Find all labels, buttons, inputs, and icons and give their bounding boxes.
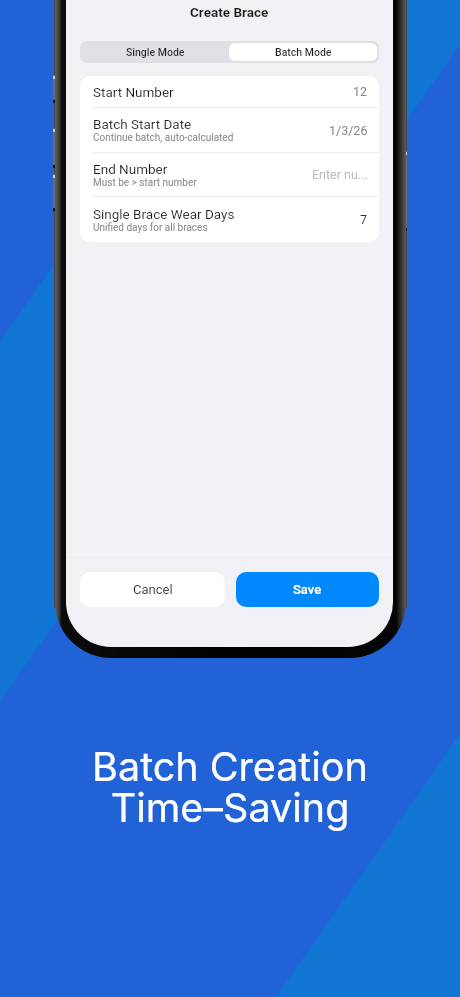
button[interactable]: Single Brace Wear Days [80,197,379,242]
staticText: Save [293,582,322,597]
button[interactable]: Single Mode [82,43,229,61]
staticText: 1/3/26 [329,123,368,138]
button[interactable]: Batch Mode [229,43,377,61]
staticText: Unified days for all braces [93,222,208,234]
staticText: Enter nu... [312,167,368,182]
button[interactable]: Batch Start Date [80,108,379,152]
staticText: Create Brace [190,4,269,20]
button[interactable]: End Number [80,153,379,196]
staticText: Continue batch, auto-calculated [93,132,234,144]
staticText: Must be > start number [93,177,197,189]
staticText: End Number [93,161,168,177]
staticText: Batch Creation Time–Saving [92,743,368,831]
button[interactable]: Start Number [80,76,379,107]
staticText: 7 [360,212,368,227]
staticText: Cancel [133,582,173,597]
staticText: Single Mode [126,46,185,58]
button[interactable]: Save [236,572,379,607]
staticText: 12 [353,84,368,99]
staticText: Start Number [93,84,174,100]
button[interactable]: Cancel [80,572,225,607]
staticText: Single Brace Wear Days [93,206,235,222]
staticText: Batch Mode [275,46,332,58]
staticText: Batch Start Date [93,116,192,132]
